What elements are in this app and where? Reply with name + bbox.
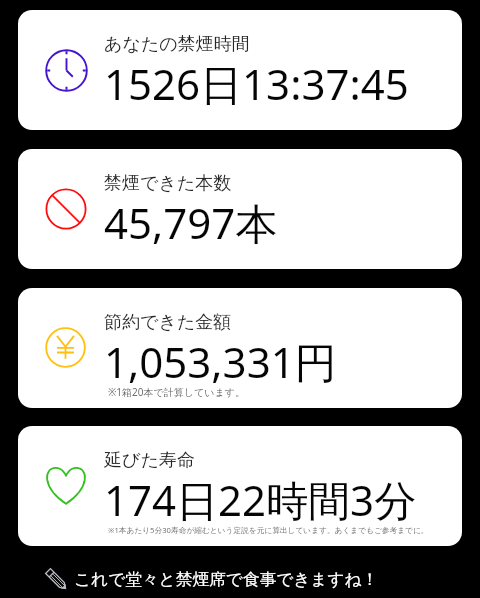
button[interactable]: 節約できた金額 bbox=[18, 288, 462, 408]
staticText: あなたの禁煙時間 bbox=[104, 33, 250, 56]
staticText: 45,797本 bbox=[104, 194, 278, 251]
staticText: 禁煙できた本数 bbox=[104, 172, 232, 195]
button[interactable]: Note bbox=[0, 569, 480, 590]
other: Note bbox=[46, 569, 67, 590]
button[interactable]: あなたの禁煙時間 bbox=[18, 10, 462, 130]
staticText: 1526日13:37:45 bbox=[104, 55, 409, 112]
staticText: 延びた寿命 bbox=[104, 449, 195, 472]
staticText: 1,053,331円 bbox=[104, 333, 337, 390]
button[interactable]: 延びた寿命 bbox=[18, 426, 462, 546]
button[interactable]: 禁煙できた本数 bbox=[18, 149, 462, 269]
staticText: ※1箱20本で計算しています。 bbox=[108, 385, 245, 399]
staticText: これで堂々と禁煙席で食事できますね！ bbox=[74, 569, 379, 590]
staticText: 節約できた金額 bbox=[104, 311, 232, 334]
staticText: ※1本あたり5分30寿命が縮むという定説を元に算出しています。あくまでもご参考ま… bbox=[108, 525, 429, 536]
staticText: 174日22時間3分 bbox=[104, 471, 417, 528]
